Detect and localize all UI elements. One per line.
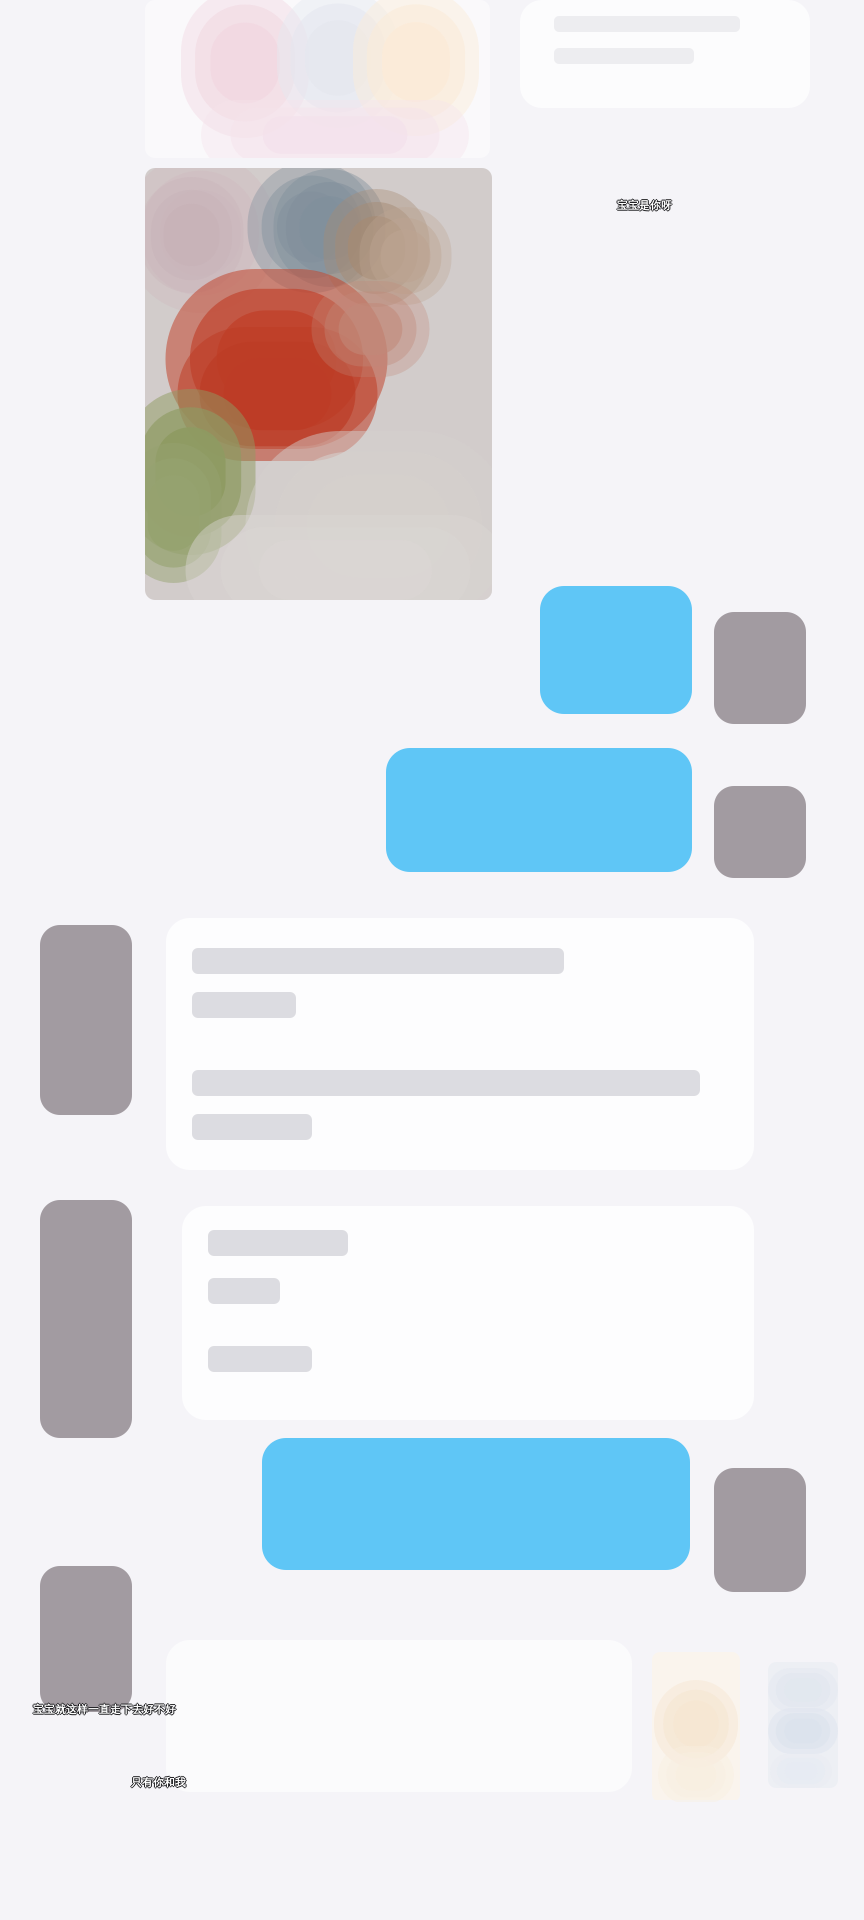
staticText: 宝宝是你呀: [617, 198, 672, 211]
button[interactable]: Sent message: [540, 586, 692, 714]
staticText: 宝宝就这样一直走下去好不好: [33, 1703, 176, 1716]
button[interactable]: Profile picture: [40, 1200, 132, 1438]
button[interactable]: Received message: [166, 918, 754, 1170]
staticText: 宝宝就这样一直走下去好不好: [34, 1703, 177, 1716]
staticText: 宝宝是你呀: [618, 199, 673, 212]
button[interactable]: Received message: [182, 1206, 754, 1420]
button[interactable]: Profile picture: [40, 1566, 132, 1712]
staticText: 只有你和我: [132, 1776, 187, 1789]
staticText: 只有你和我: [130, 1776, 185, 1789]
button[interactable]: Profile picture: [40, 925, 132, 1115]
staticText: 宝宝是你呀: [616, 199, 671, 212]
button[interactable]: Photo attachment: [652, 1652, 740, 1802]
button[interactable]: Profile picture: [714, 1468, 806, 1592]
staticText: 宝宝是你呀: [617, 200, 672, 213]
button[interactable]: Photo attachment: [768, 1662, 838, 1788]
staticText: 宝宝就这样一直走下去好不好: [32, 1703, 175, 1716]
staticText: 只有你和我: [131, 1775, 186, 1788]
staticText: 只有你和我: [131, 1777, 186, 1790]
staticText: 宝宝是你呀: [617, 199, 672, 212]
button[interactable]: Profile picture: [714, 786, 806, 878]
button[interactable]: Sent message: [262, 1438, 690, 1570]
button[interactable]: Profile picture: [714, 612, 806, 724]
button[interactable]: Sent message: [386, 748, 692, 872]
staticText: 宝宝就这样一直走下去好不好: [33, 1702, 176, 1715]
staticText: 宝宝就这样一直走下去好不好: [33, 1704, 176, 1717]
button[interactable]: Photo message: [145, 168, 492, 600]
staticText: 只有你和我: [131, 1776, 186, 1789]
